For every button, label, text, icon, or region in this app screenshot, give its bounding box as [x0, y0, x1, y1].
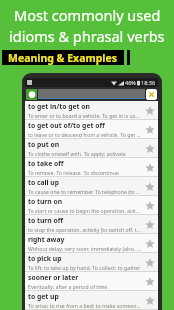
staticText: To enter or to board a vehicle. To get i…: [28, 112, 141, 119]
button[interactable]: to turn off: [25, 215, 158, 233]
staticText: right away: [28, 235, 65, 244]
button[interactable]: Clear: [146, 89, 157, 100]
staticText: to turn off: [28, 216, 64, 225]
button[interactable]: to call up: [25, 177, 158, 195]
staticText: To remove. To release. To discontinue: [28, 169, 119, 176]
staticText: Eventually, after a period of time: [28, 283, 108, 290]
staticText: idioms & phrasal verbs: [9, 26, 165, 46]
button[interactable]: to pick up: [25, 253, 158, 271]
staticText: to leave or to descend from a vehicle. T…: [28, 131, 141, 138]
staticText: to take off: [28, 159, 64, 168]
staticText: to turn on: [28, 197, 63, 206]
button[interactable]: to get up: [25, 291, 158, 309]
staticText: To start or cause to begin the operation…: [28, 207, 141, 214]
button[interactable]: Favorite: [143, 199, 156, 212]
staticText: To arise; to rise from a bed; to make so…: [28, 302, 141, 309]
button[interactable]: right away: [25, 234, 158, 252]
button[interactable]: Favorite: [143, 104, 156, 117]
button[interactable]: Favorite: [143, 294, 156, 307]
staticText: to get out of/to get off: [28, 121, 105, 130]
button[interactable]: sooner or later: [25, 272, 158, 290]
button[interactable]: to take off: [25, 158, 158, 176]
button[interactable]: Favorite: [143, 275, 156, 288]
staticText: Most commonly used: [14, 5, 161, 25]
staticText: sooner or later: [28, 273, 79, 282]
staticText: to put on: [28, 140, 60, 149]
button[interactable]: Favorite: [143, 123, 156, 136]
button[interactable]: to get out of/to get off: [25, 120, 158, 138]
staticText: to get up: [28, 292, 59, 301]
button[interactable]: Search: [26, 89, 37, 100]
staticText: To cause one to remember. To telephone (…: [28, 188, 141, 195]
staticText: to pick up: [28, 254, 62, 263]
button[interactable]: to turn on: [25, 196, 158, 214]
button[interactable]: Favorite: [143, 256, 156, 269]
button[interactable]: Favorite: [143, 218, 156, 231]
button[interactable]: Favorite: [143, 237, 156, 250]
button[interactable]: to put on: [25, 139, 158, 157]
staticText: To lift; to take up by hand. To collect;…: [28, 264, 141, 271]
staticText: to get in/to get on: [28, 102, 91, 111]
button[interactable]: Favorite: [143, 180, 156, 193]
button[interactable]: Favorite: [143, 161, 156, 174]
button[interactable]: Meaning & Examples: [2, 50, 124, 65]
staticText: 46%: [125, 79, 136, 86]
staticText: Meaning & Examples: [8, 51, 118, 65]
button[interactable]: to get in/to get on: [25, 101, 158, 119]
button[interactable]: Favorite: [143, 142, 156, 155]
staticText: to call up: [28, 178, 60, 187]
staticText: to stop the operation, activity (to swit…: [28, 226, 141, 233]
staticText: Without delay; very soon; immediately (a…: [28, 245, 141, 252]
staticText: 18:36: [141, 79, 156, 86]
staticText: To clothe oneself with. To apply; activa…: [28, 150, 126, 157]
